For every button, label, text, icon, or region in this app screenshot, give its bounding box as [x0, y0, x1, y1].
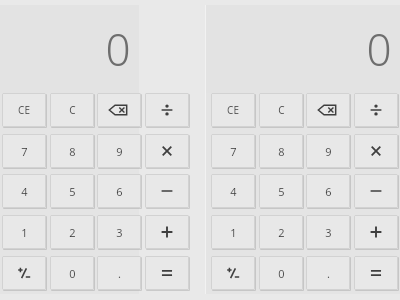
staticText: 9	[116, 144, 123, 159]
button[interactable]: 4	[2, 174, 46, 208]
staticText: 6	[116, 184, 123, 199]
staticText: 0	[278, 266, 285, 281]
staticText: 2	[69, 225, 76, 240]
button[interactable]: CE	[211, 93, 255, 127]
button[interactable]: 2	[259, 215, 303, 249]
staticText: 0	[105, 19, 131, 79]
staticText: 1	[21, 225, 28, 240]
button[interactable]: 7	[211, 134, 255, 168]
staticText: C	[278, 103, 285, 117]
button[interactable]: Multiply	[354, 134, 398, 168]
button[interactable]: Plus minus	[2, 256, 46, 290]
button[interactable]: Add	[145, 215, 189, 249]
button[interactable]: Backspace	[306, 93, 350, 127]
staticText: 6	[325, 184, 332, 199]
button[interactable]: 0	[50, 256, 94, 290]
staticText: 3	[116, 225, 123, 240]
button[interactable]: CE	[2, 93, 46, 127]
button[interactable]: 4	[211, 174, 255, 208]
staticText: 4	[230, 184, 237, 199]
button[interactable]: 1	[211, 215, 255, 249]
button[interactable]: 6	[97, 174, 141, 208]
button[interactable]: Divide	[354, 93, 398, 127]
staticText: .	[118, 266, 121, 281]
staticText: 7	[230, 144, 237, 159]
button[interactable]: Divide	[145, 93, 189, 127]
button[interactable]: 3	[97, 215, 141, 249]
button[interactable]: Plus minus	[211, 256, 255, 290]
button[interactable]: Add	[354, 215, 398, 249]
button[interactable]: 5	[259, 174, 303, 208]
button[interactable]: 0	[259, 256, 303, 290]
staticText: 5	[278, 184, 285, 199]
button[interactable]: 9	[97, 134, 141, 168]
button[interactable]: Backspace	[97, 93, 141, 127]
button[interactable]: 2	[50, 215, 94, 249]
button[interactable]: C	[259, 93, 303, 127]
staticText: 8	[278, 144, 285, 159]
staticText: 1	[230, 225, 237, 240]
button[interactable]: 7	[2, 134, 46, 168]
staticText: .	[327, 266, 330, 281]
button[interactable]: .	[97, 256, 141, 290]
staticText: 7	[21, 144, 28, 159]
button[interactable]: 1	[2, 215, 46, 249]
button[interactable]: C	[50, 93, 94, 127]
button[interactable]: Equals	[354, 256, 398, 290]
staticText: CE	[18, 103, 30, 117]
staticText: 2	[278, 225, 285, 240]
button[interactable]: 9	[306, 134, 350, 168]
staticText: 5	[69, 184, 76, 199]
staticText: 8	[69, 144, 76, 159]
button[interactable]: Subtract	[354, 174, 398, 208]
button[interactable]: 3	[306, 215, 350, 249]
staticText: 9	[325, 144, 332, 159]
button[interactable]: 8	[50, 134, 94, 168]
button[interactable]: .	[306, 256, 350, 290]
staticText: 0	[69, 266, 76, 281]
button[interactable]: Equals	[145, 256, 189, 290]
staticText: 3	[325, 225, 332, 240]
staticText: 0	[366, 19, 392, 79]
button[interactable]: Subtract	[145, 174, 189, 208]
staticText: C	[69, 103, 76, 117]
staticText: 4	[21, 184, 28, 199]
button[interactable]: 5	[50, 174, 94, 208]
button[interactable]: 6	[306, 174, 350, 208]
button[interactable]: 8	[259, 134, 303, 168]
staticText: CE	[227, 103, 239, 117]
button[interactable]: Multiply	[145, 134, 189, 168]
